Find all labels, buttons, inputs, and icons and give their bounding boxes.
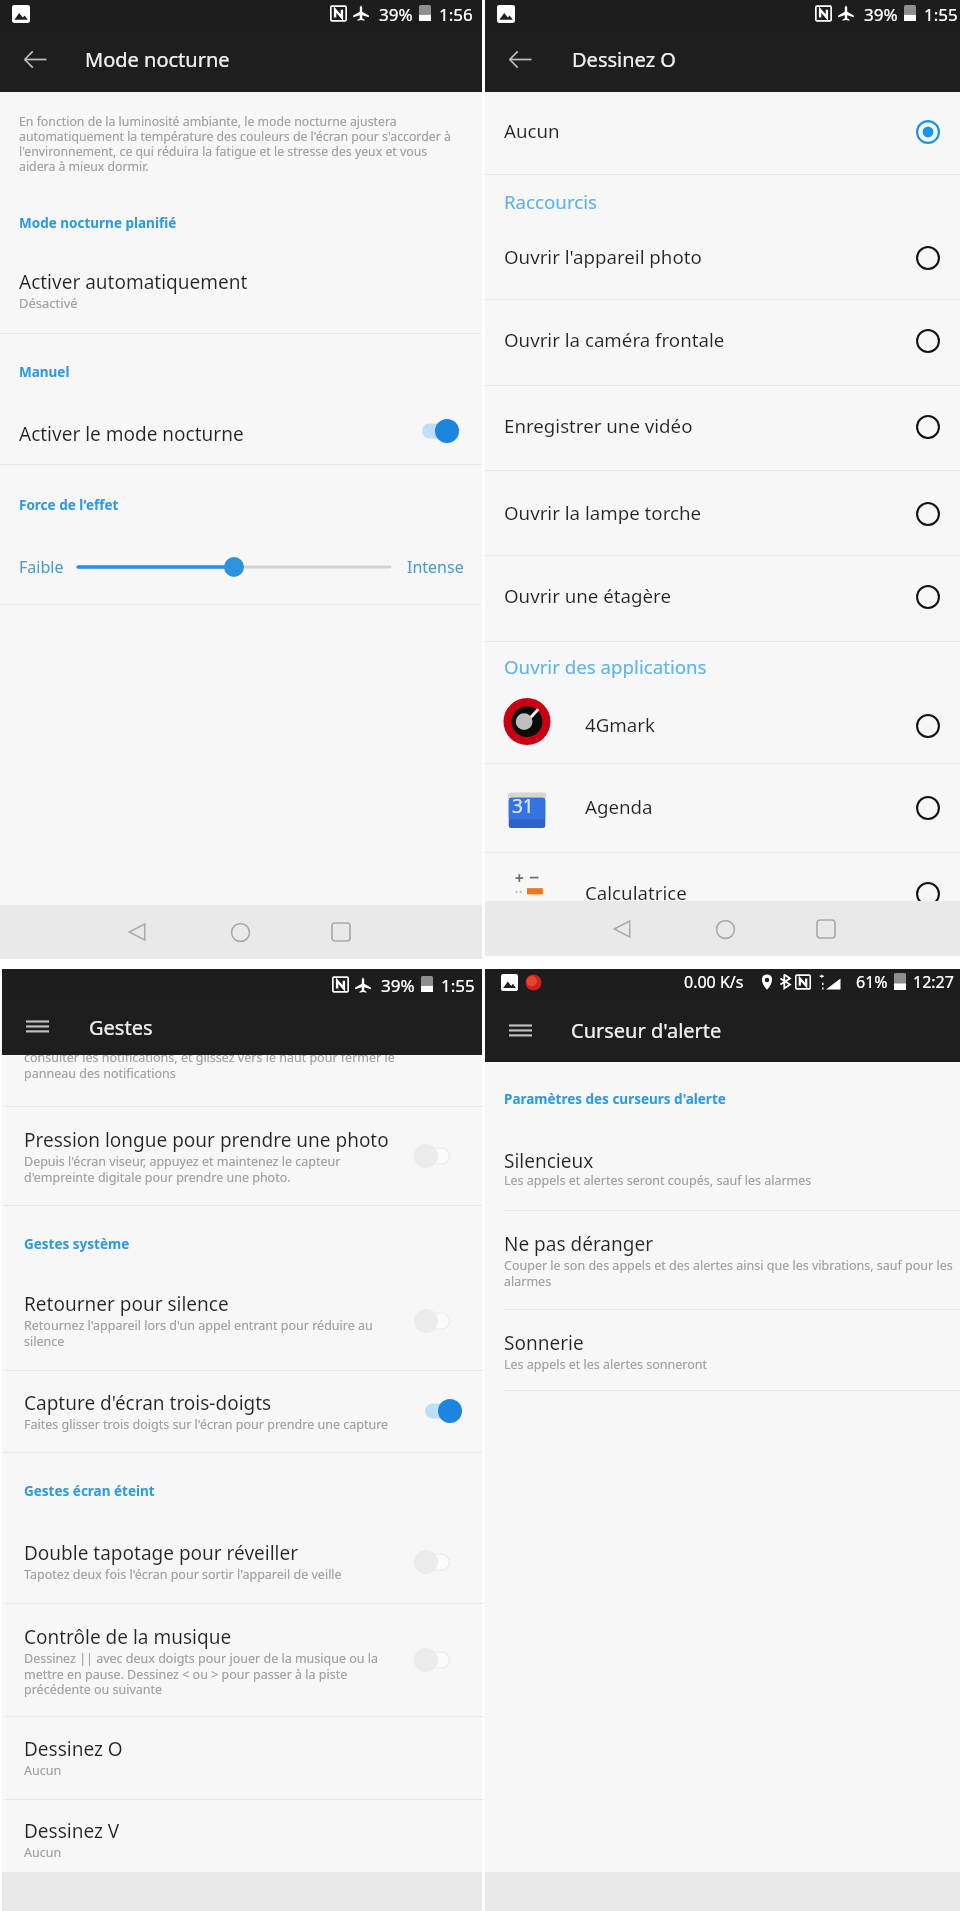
staticText: En fonction de la luminosité ambiante, l… <box>19 113 471 174</box>
button[interactable] <box>2 1282 482 1360</box>
staticText: Sonnerie <box>504 1330 584 1356</box>
button[interactable]: Recents <box>800 903 852 955</box>
staticText: Gestes <box>89 1014 153 1041</box>
staticText: Raccourcis <box>504 189 597 214</box>
staticText: Tapotez deux fois l'écran pour sortir l'… <box>24 1566 484 1583</box>
staticText: Retourner pour silence <box>24 1291 229 1317</box>
staticText: Capture d'écran trois-doigts <box>24 1390 272 1416</box>
staticText: 1:55 <box>441 974 475 997</box>
staticText: Pression longue pour prendre une photo <box>24 1127 389 1153</box>
staticText: Les appels et alertes seront coupés, sau… <box>504 1172 812 1189</box>
button[interactable] <box>485 1140 960 1198</box>
staticText: Paramètres des curseurs d'alerte <box>504 1090 726 1108</box>
button[interactable]: Home <box>699 903 751 955</box>
button[interactable] <box>485 1222 960 1294</box>
button[interactable] <box>0 262 482 320</box>
button[interactable] <box>485 700 960 758</box>
staticText: Agenda <box>585 794 653 819</box>
staticText: Activer le mode nocturne <box>19 421 244 447</box>
staticText: Ouvrir des applications <box>504 654 707 679</box>
staticText: Enregistrer une vidéo <box>504 413 693 438</box>
button[interactable] <box>485 871 960 929</box>
staticText: Aucun <box>24 1844 62 1861</box>
button[interactable]: Menu <box>9 998 65 1054</box>
staticText: Silencieux <box>504 1148 594 1174</box>
button[interactable]: Recents <box>315 906 367 958</box>
staticText: Faites glisser trois doigts sur l'écran … <box>24 1416 484 1433</box>
button[interactable] <box>485 1321 960 1379</box>
staticText: Double tapotage pour réveiller <box>24 1540 299 1566</box>
button[interactable] <box>2 1382 482 1445</box>
button[interactable] <box>485 232 960 288</box>
staticText: Gestes système <box>24 1235 130 1253</box>
staticText: Ouvrir la lampe torche <box>504 500 702 525</box>
staticText: Retournez l'appareil lors d'un appel ent… <box>24 1317 484 1350</box>
button[interactable]: Menu <box>492 1002 548 1058</box>
staticText: Ouvrir la caméra frontale <box>504 327 725 352</box>
staticText: consulter les notifications, et glissez … <box>24 1049 395 1082</box>
button[interactable] <box>2 1616 482 1710</box>
staticText: Intense <box>407 556 464 578</box>
button[interactable] <box>485 403 960 459</box>
staticText: Les appels et les alertes sonneront <box>504 1356 708 1373</box>
staticText: Dessinez || avec deux doigts pour jouer … <box>24 1650 484 1698</box>
staticText: Faible <box>19 556 64 578</box>
button[interactable]: Home <box>214 906 266 958</box>
staticText: Activer automatiquement <box>19 269 248 295</box>
button[interactable] <box>485 92 960 174</box>
staticText: Depuis l'écran viseur, appuyez et mainte… <box>24 1153 484 1186</box>
staticText: 39% <box>379 3 413 26</box>
staticText: Couper le son des appels et des alertes … <box>504 1257 960 1290</box>
staticText: Manuel <box>19 363 70 381</box>
staticText: 12:27 <box>913 971 954 993</box>
staticText: Force de l'effet <box>19 496 119 514</box>
staticText: Curseur d'alerte <box>571 1017 722 1044</box>
staticText: 31 <box>512 793 534 819</box>
staticText: Aucun <box>24 1762 62 1779</box>
staticText: Dessinez O <box>572 46 676 73</box>
staticText: Ne pas déranger <box>504 1231 653 1257</box>
button[interactable] <box>485 785 960 843</box>
button[interactable]: Back <box>596 903 648 955</box>
staticText: 1:56 <box>439 3 473 26</box>
button[interactable] <box>485 488 960 544</box>
button[interactable] <box>485 573 960 629</box>
staticText: Mode nocturne <box>85 46 230 73</box>
staticText: Contrôle de la musique <box>24 1624 232 1650</box>
button[interactable]: Back <box>111 906 163 958</box>
staticText: 0.00 K/s <box>684 971 744 993</box>
staticText: 39% <box>381 974 415 997</box>
button[interactable] <box>2 1116 482 1200</box>
staticText: Ouvrir l'appareil photo <box>504 244 702 269</box>
staticText: Aucun <box>504 118 560 143</box>
staticText: Désactivé <box>19 294 78 312</box>
staticText: Dessinez V <box>24 1818 120 1844</box>
staticText: Dessinez O <box>24 1736 123 1762</box>
button[interactable] <box>2 1532 482 1595</box>
button[interactable]: Back <box>492 31 548 87</box>
staticText: 61% <box>856 971 888 993</box>
staticText: Mode nocturne planifié <box>19 214 177 232</box>
staticText: Calculatrice <box>585 880 687 905</box>
button[interactable] <box>485 318 960 374</box>
staticText: 1:55 <box>924 3 958 26</box>
button[interactable] <box>0 412 482 457</box>
staticText: 39% <box>864 3 898 26</box>
button[interactable] <box>0 0 482 30</box>
button[interactable]: Back <box>7 31 63 87</box>
button[interactable] <box>2 1728 482 1786</box>
staticText: Gestes écran éteint <box>24 1482 155 1500</box>
button[interactable] <box>2 1810 482 1868</box>
staticText: Ouvrir une étagère <box>504 583 671 608</box>
staticText: 4Gmark <box>585 712 655 737</box>
